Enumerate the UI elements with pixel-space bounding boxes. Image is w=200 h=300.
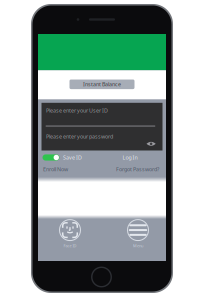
staticText: Forgot Password?	[116, 166, 159, 173]
button[interactable]: Instant Balance	[69, 79, 134, 89]
button[interactable]: Menu	[111, 218, 165, 250]
staticText: Enroll Now	[43, 166, 68, 173]
staticText: Instant Balance	[83, 81, 121, 88]
button[interactable]: Enroll Now	[43, 165, 73, 173]
button[interactable]: Face ID	[43, 218, 97, 250]
button[interactable]: Save ID	[42, 153, 82, 162]
staticText: Save ID	[63, 154, 82, 161]
button[interactable]: Log In	[113, 153, 147, 162]
staticText: Please enter your password	[46, 133, 113, 140]
staticText: Log In	[122, 154, 137, 161]
staticText: Please enter your User ID	[46, 107, 108, 114]
staticText: Face ID	[63, 243, 76, 248]
button[interactable]: Forgot Password?	[113, 165, 159, 173]
staticText: Menu	[133, 243, 143, 248]
